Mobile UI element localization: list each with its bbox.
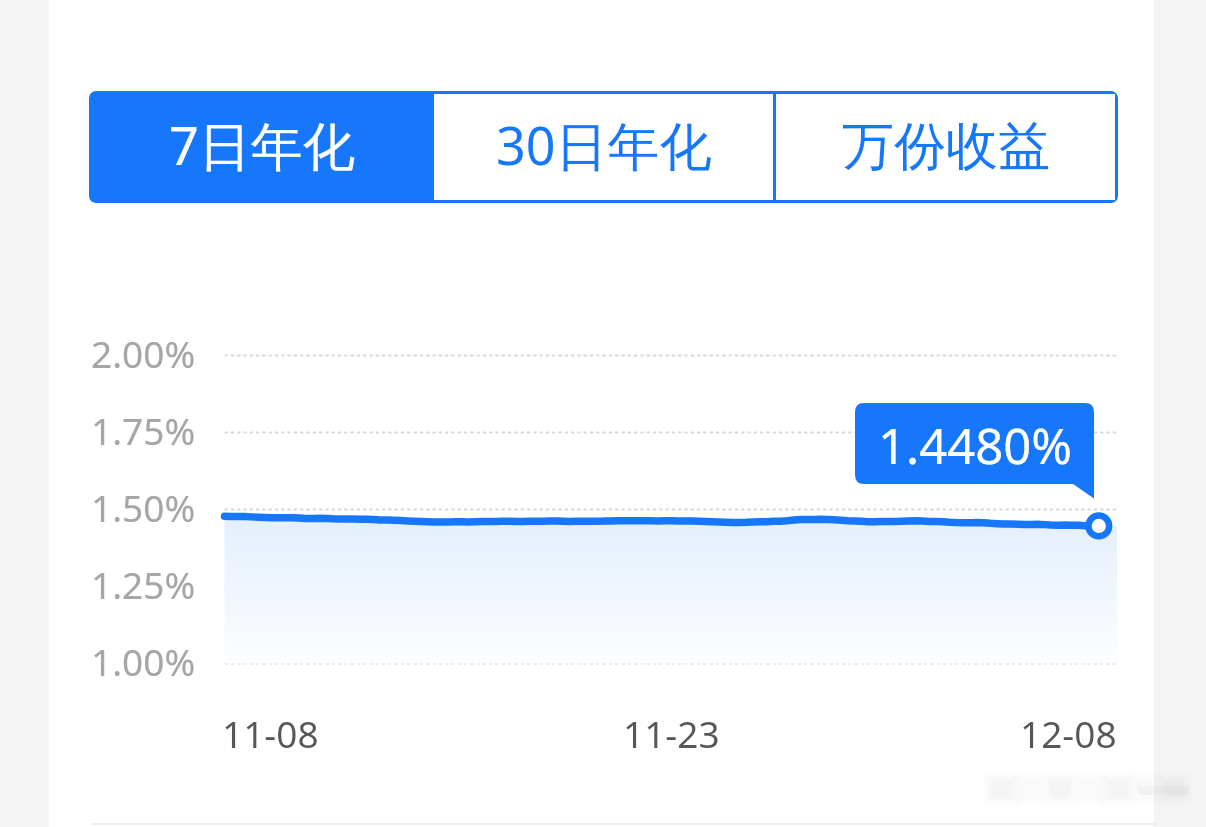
- staticText: 12-08: [1020, 708, 1117, 758]
- staticText: 万份收益: [842, 114, 1050, 180]
- button[interactable]: 万份收益: [776, 94, 1115, 200]
- button[interactable]: 7日年化: [92, 94, 431, 200]
- staticText: 7日年化: [169, 109, 355, 180]
- button[interactable]: Latest yield 1.4480 percent: [855, 403, 1099, 503]
- other: 7 day annualised yield chart: [0, 0, 1206, 827]
- staticText: 1.00%: [91, 636, 196, 686]
- staticText: 2.00%: [91, 328, 196, 378]
- staticText: 1.4480%: [878, 412, 1072, 479]
- staticText: 30日年化: [496, 109, 712, 180]
- staticText: 1.25%: [91, 559, 196, 609]
- staticText: 11-23: [623, 708, 720, 758]
- button[interactable]: 30日年化: [434, 94, 773, 200]
- staticText: 11-08: [222, 708, 319, 758]
- staticText: 1.75%: [91, 405, 196, 455]
- staticText: 1.50%: [91, 482, 196, 532]
